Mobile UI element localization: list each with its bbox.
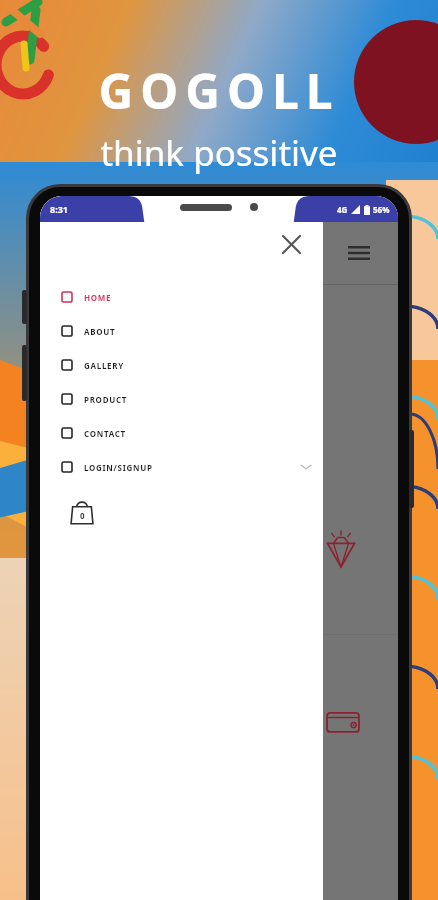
staticText: GOGOLL [98, 58, 340, 123]
button[interactable]: Menu [342, 236, 376, 270]
staticText: 56% [373, 204, 390, 215]
staticText: LOGIN/SIGNUP [84, 462, 153, 473]
staticText: 8:31 [50, 203, 68, 215]
staticText: HOME [84, 292, 112, 303]
button[interactable]: ABOUT [40, 314, 323, 348]
staticText: GALLERY [84, 360, 124, 371]
button[interactable]: LOGIN/SIGNUP [40, 450, 323, 484]
staticText: Healthy at the [58, 323, 251, 360]
button[interactable]: PRODUCT [40, 382, 323, 416]
staticText: eiusmod [58, 438, 99, 452]
button[interactable]: GALLERY [40, 348, 323, 382]
button[interactable]: Close [275, 228, 307, 260]
staticText: 4G [337, 204, 348, 215]
staticText: think possitive [100, 129, 338, 177]
staticText: PRODUCT [84, 394, 128, 405]
button[interactable]: CONTACT [40, 416, 323, 450]
staticText: ABOUT [84, 326, 116, 337]
staticText: 0 [80, 510, 85, 521]
staticText: CONTACT [84, 428, 126, 439]
button[interactable]: Cart [62, 492, 102, 532]
button[interactable]: HOME [40, 280, 323, 314]
